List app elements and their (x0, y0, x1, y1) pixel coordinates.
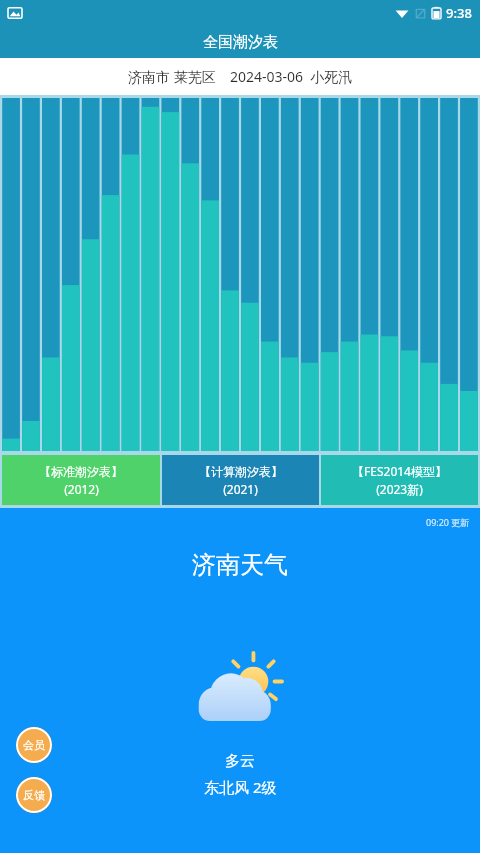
staticText: 会员 (23, 738, 45, 752)
button[interactable]: 会员 (16, 727, 52, 763)
staticText: 东北风 2级 (204, 777, 277, 797)
staticText: 09:20 更新 (426, 516, 470, 528)
button[interactable]: 反馈 (16, 777, 52, 813)
staticText: 济南市 莱芜区 (128, 67, 216, 86)
staticText: (2012) (64, 481, 99, 497)
staticText: 【FES2014模型】 (352, 463, 447, 479)
staticText: (2023新) (376, 481, 423, 497)
staticText: 全国潮汐表 (203, 33, 278, 52)
staticText: 多云 (225, 752, 255, 771)
staticText: 济南天气 (192, 550, 288, 580)
button[interactable]: 【标准潮汐表】 (2, 455, 160, 505)
staticText: (2021) (223, 481, 258, 497)
button[interactable]: 【计算潮汐表】 (162, 455, 319, 505)
staticText: 9:38 (446, 4, 472, 22)
staticText: 2024-03-06 小死汛 (230, 67, 353, 86)
staticText: 【标准潮汐表】 (39, 464, 123, 479)
button[interactable]: 【FES2014模型】 (321, 455, 478, 505)
staticText: 反馈 (23, 788, 45, 802)
staticText: 【计算潮汐表】 (199, 464, 283, 479)
other: Partly cloudy weather (192, 646, 288, 742)
